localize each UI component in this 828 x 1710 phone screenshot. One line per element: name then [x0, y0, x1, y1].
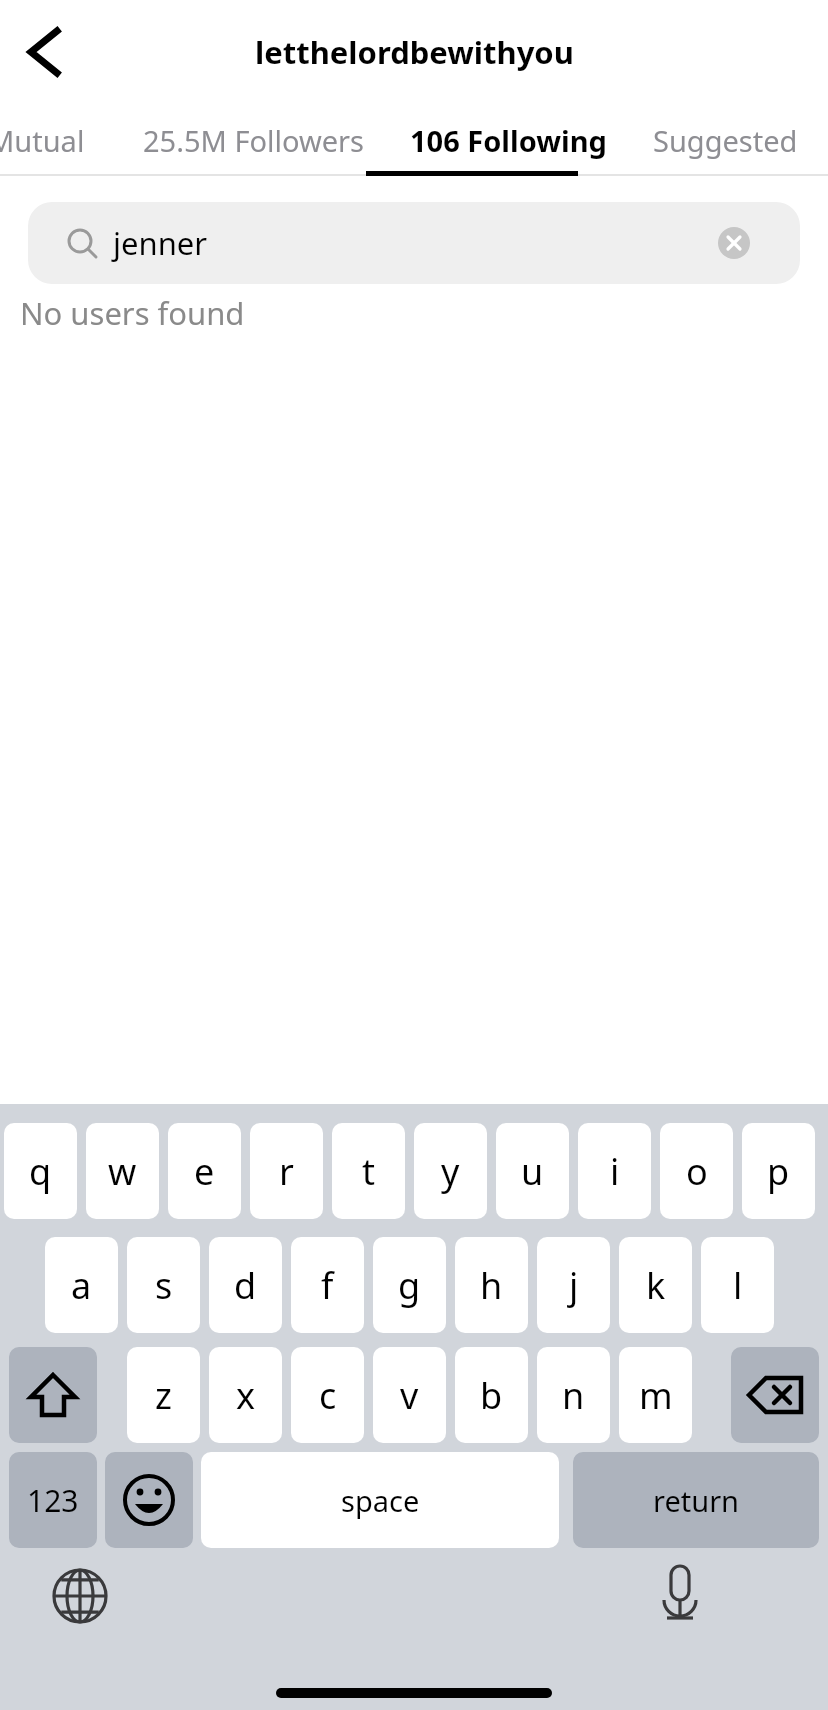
staticText: space: [341, 1481, 420, 1520]
button[interactable]: v: [373, 1347, 446, 1443]
staticText: Suggested: [653, 121, 798, 160]
staticText: m: [639, 1371, 673, 1420]
button[interactable]: 123: [9, 1452, 97, 1548]
staticText: d: [234, 1261, 257, 1310]
staticText: 123: [27, 1480, 79, 1521]
button[interactable]: o: [660, 1123, 733, 1219]
staticText: g: [398, 1261, 421, 1310]
staticText: h: [480, 1261, 503, 1310]
button[interactable]: Clear text: [718, 227, 750, 259]
staticText: v: [400, 1371, 419, 1420]
staticText: e: [194, 1147, 215, 1196]
staticText: a: [71, 1261, 92, 1310]
staticText: p: [767, 1147, 790, 1196]
button[interactable]: 106 Following: [410, 104, 607, 176]
staticText: w: [108, 1147, 137, 1196]
button[interactable]: e: [168, 1123, 241, 1219]
button[interactable]: s: [127, 1237, 200, 1333]
staticText: u: [521, 1147, 544, 1196]
staticText: j: [569, 1261, 579, 1310]
button[interactable]: Emoji: [105, 1452, 193, 1548]
button[interactable]: jenner: [28, 202, 800, 284]
button[interactable]: b: [455, 1347, 528, 1443]
button[interactable]: u: [496, 1123, 569, 1219]
button[interactable]: h: [455, 1237, 528, 1333]
button[interactable]: p: [742, 1123, 815, 1219]
button[interactable]: y: [414, 1123, 487, 1219]
button[interactable]: g: [373, 1237, 446, 1333]
button[interactable]: a: [45, 1237, 118, 1333]
staticText: k: [646, 1261, 666, 1310]
staticText: c: [319, 1371, 337, 1420]
button[interactable]: j: [537, 1237, 610, 1333]
button[interactable]: z: [127, 1347, 200, 1443]
button[interactable]: x: [209, 1347, 282, 1443]
staticText: x: [236, 1371, 256, 1420]
staticText: n: [562, 1371, 585, 1420]
button[interactable]: d: [209, 1237, 282, 1333]
button[interactable]: Backspace: [731, 1347, 819, 1443]
staticText: return: [653, 1481, 740, 1520]
button[interactable]: q: [4, 1123, 77, 1219]
button[interactable]: Switch keyboard: [48, 1564, 112, 1628]
button[interactable]: Mutual: [0, 104, 85, 176]
button[interactable]: space: [201, 1452, 559, 1548]
button[interactable]: c: [291, 1347, 364, 1443]
staticText: jenner: [113, 222, 208, 264]
button[interactable]: Dictate: [648, 1562, 712, 1626]
staticText: b: [480, 1371, 503, 1420]
staticText: q: [29, 1147, 52, 1196]
button[interactable]: Suggested: [653, 104, 798, 176]
staticText: y: [441, 1147, 460, 1196]
staticText: r: [279, 1147, 294, 1196]
button[interactable]: m: [619, 1347, 692, 1443]
staticText: o: [686, 1147, 708, 1196]
staticText: letthelordbewithyou: [255, 31, 574, 73]
button[interactable]: n: [537, 1347, 610, 1443]
button[interactable]: l: [701, 1237, 774, 1333]
button[interactable]: t: [332, 1123, 405, 1219]
staticText: Mutual: [0, 121, 85, 160]
staticText: f: [321, 1261, 334, 1310]
button[interactable]: f: [291, 1237, 364, 1333]
button[interactable]: i: [578, 1123, 651, 1219]
staticText: z: [155, 1371, 172, 1420]
staticText: t: [362, 1147, 375, 1196]
staticText: l: [733, 1261, 743, 1310]
button[interactable]: Back: [6, 14, 82, 90]
staticText: 106 Following: [410, 121, 607, 160]
button[interactable]: r: [250, 1123, 323, 1219]
button[interactable]: w: [86, 1123, 159, 1219]
staticText: No users found: [20, 292, 245, 334]
button[interactable]: 25.5M Followers: [143, 104, 364, 176]
staticText: 25.5M Followers: [143, 121, 364, 160]
staticText: i: [610, 1147, 620, 1196]
button[interactable]: return: [573, 1452, 819, 1548]
button[interactable]: k: [619, 1237, 692, 1333]
staticText: s: [155, 1261, 173, 1310]
button[interactable]: Shift: [9, 1347, 97, 1443]
